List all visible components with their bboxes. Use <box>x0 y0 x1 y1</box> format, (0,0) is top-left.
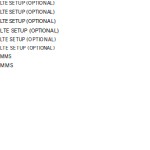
staticText: LTE SETUP (OPTIONAL) <box>0 0 55 6</box>
staticText: LTE SETUP (OPTIONAL) <box>0 18 56 24</box>
staticText: LTE SETUP (OPTIONAL) <box>0 9 55 15</box>
staticText: MMS <box>0 62 13 68</box>
staticText: LTE SETUP (OPTIONAL) <box>0 37 56 42</box>
staticText: LTE SETUP (OPTIONAL) <box>0 45 55 51</box>
staticText: MMS <box>0 54 11 59</box>
staticText: LTE SETUP (OPTIONAL) <box>0 27 59 34</box>
